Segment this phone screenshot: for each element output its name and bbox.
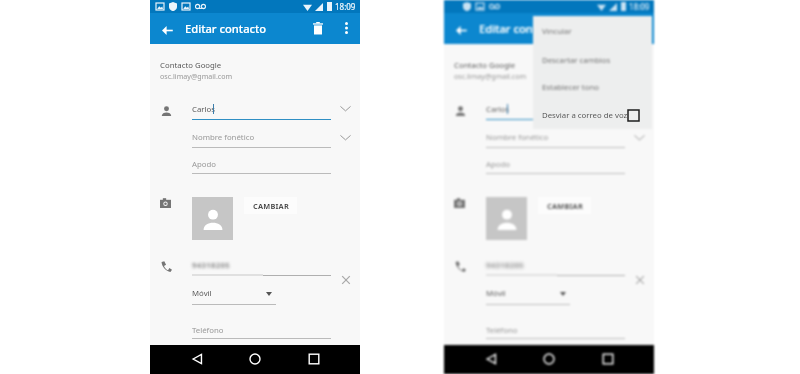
button[interactable]: Expand phonetic name bbox=[340, 134, 351, 141]
staticText: Editar contacto bbox=[479, 21, 561, 36]
staticText: Nombre fonético bbox=[486, 132, 549, 143]
staticText: Desviar a correo de voz bbox=[542, 110, 628, 121]
button[interactable]: Home bbox=[246, 350, 264, 368]
button[interactable]: Contact photo bbox=[486, 197, 527, 240]
staticText: Apodo bbox=[486, 159, 511, 170]
button[interactable]: Remove phone number bbox=[635, 275, 645, 285]
button[interactable]: Back bbox=[158, 21, 176, 39]
staticText: osc.limay@gmail.com bbox=[454, 71, 527, 81]
button[interactable]: Delete contact bbox=[309, 19, 327, 37]
staticText: 943182050 bbox=[486, 260, 528, 271]
button[interactable]: Vincular bbox=[542, 20, 652, 42]
button[interactable]: Expand phonetic name bbox=[634, 134, 645, 141]
staticText: Carlos bbox=[192, 104, 215, 115]
button[interactable]: Remove phone number bbox=[341, 275, 351, 285]
staticText: Contacto Google bbox=[454, 60, 516, 71]
staticText: 18:09 bbox=[335, 1, 356, 12]
staticText: Editar contacto bbox=[185, 21, 267, 36]
button[interactable]: Recent apps bbox=[305, 350, 323, 368]
button[interactable]: CAMBIAR bbox=[244, 197, 297, 214]
staticText: 943182050 bbox=[192, 260, 234, 271]
staticText: Establecer tono bbox=[542, 82, 599, 93]
button[interactable]: Recent apps bbox=[599, 350, 617, 368]
staticText: CAMBIAR bbox=[547, 201, 583, 211]
staticText: Teléfono bbox=[486, 325, 518, 336]
staticText: Vincular bbox=[542, 26, 572, 37]
button[interactable]: Desviar a correo de voz bbox=[533, 102, 652, 129]
button[interactable]: More options bbox=[337, 19, 355, 37]
button[interactable]: Home bbox=[540, 350, 558, 368]
button[interactable]: Expand name bbox=[634, 105, 645, 112]
staticText: Nombre fonético bbox=[192, 132, 255, 143]
staticText: Móvil bbox=[192, 288, 212, 299]
button[interactable]: Establecer tono bbox=[542, 76, 652, 98]
staticText: Móvil bbox=[486, 288, 506, 299]
button[interactable]: Back bbox=[452, 21, 470, 39]
staticText: CAMBIAR bbox=[253, 201, 289, 211]
button[interactable]: Descartar cambios bbox=[542, 49, 652, 71]
staticText: Teléfono bbox=[192, 325, 224, 336]
button[interactable]: Back bbox=[482, 350, 500, 368]
staticText: Apodo bbox=[192, 159, 217, 170]
button[interactable]: Back bbox=[188, 350, 206, 368]
staticText: Descartar cambios bbox=[542, 55, 611, 66]
button[interactable]: Expand name bbox=[340, 105, 351, 112]
staticText: Carlos bbox=[486, 104, 509, 115]
staticText: osc.limay@gmail.com bbox=[160, 71, 233, 81]
staticText: 18:09 bbox=[629, 1, 650, 12]
staticText: Contacto Google bbox=[160, 60, 222, 71]
button[interactable]: Contact photo bbox=[192, 197, 233, 240]
button[interactable]: CAMBIAR bbox=[538, 197, 591, 214]
